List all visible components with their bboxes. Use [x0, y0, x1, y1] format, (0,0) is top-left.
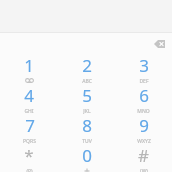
staticText: 4: [24, 84, 34, 107]
staticText: JKL: [83, 108, 91, 114]
staticText: 7: [25, 114, 35, 137]
staticText: (P): [26, 168, 33, 172]
button[interactable]: #: [115, 144, 172, 172]
button[interactable]: 7: [0, 114, 58, 144]
staticText: 0: [82, 144, 92, 167]
staticText: *: [24, 144, 34, 167]
button[interactable]: 8: [58, 114, 115, 144]
button[interactable]: 0: [58, 144, 115, 172]
staticText: 9: [139, 114, 149, 137]
staticText: 6: [139, 84, 149, 107]
button[interactable]: Backspace: [149, 34, 169, 54]
staticText: ABC: [82, 78, 92, 84]
button[interactable]: 9: [115, 114, 172, 144]
staticText: TUV: [82, 138, 92, 144]
staticText: 3: [139, 54, 149, 77]
staticText: #: [138, 144, 149, 167]
staticText: 5: [82, 84, 92, 107]
staticText: WXYZ: [137, 138, 151, 144]
button[interactable]: *: [0, 144, 58, 172]
button[interactable]: 1: [0, 54, 58, 84]
staticText: 1: [24, 54, 34, 77]
staticText: GHI: [24, 108, 34, 114]
staticText: (W): [140, 168, 148, 172]
staticText: PQRS: [23, 138, 36, 144]
button[interactable]: 3: [115, 54, 172, 84]
button[interactable]: 4: [0, 84, 58, 114]
button[interactable]: 2: [58, 54, 115, 84]
staticText: 8: [82, 114, 92, 137]
staticText: 2: [82, 54, 92, 77]
staticText: MNO: [137, 108, 150, 114]
button[interactable]: 6: [115, 84, 172, 114]
button[interactable]: 5: [58, 84, 115, 114]
staticText: DEF: [139, 78, 149, 84]
